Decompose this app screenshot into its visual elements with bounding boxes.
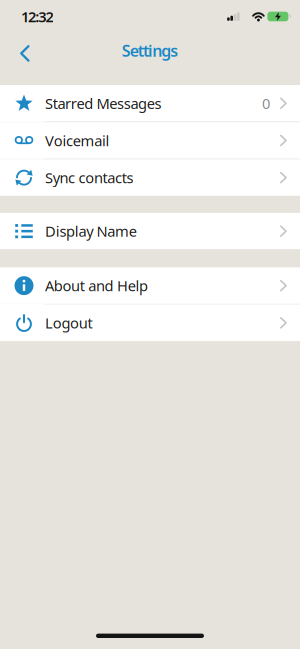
button[interactable]: Back bbox=[0, 45, 30, 62]
staticText: 12:32 bbox=[21, 7, 53, 26]
staticText: Logout bbox=[45, 313, 92, 333]
button[interactable]: Starred Messages bbox=[0, 85, 300, 121]
button[interactable]: Display Name bbox=[0, 213, 300, 249]
staticText: Voicemail bbox=[45, 131, 110, 150]
button[interactable]: Sync contacts bbox=[0, 159, 300, 196]
button[interactable]: Voicemail bbox=[0, 122, 300, 159]
button[interactable]: About and Help bbox=[0, 267, 300, 304]
staticText: Starred Messages bbox=[45, 93, 161, 113]
staticText: 0 bbox=[262, 93, 270, 113]
staticText: About and Help bbox=[45, 276, 148, 295]
staticText: Settings bbox=[122, 40, 178, 61]
button[interactable]: Logout bbox=[0, 305, 300, 341]
staticText: Display Name bbox=[45, 221, 137, 241]
staticText: Sync contacts bbox=[45, 168, 133, 187]
